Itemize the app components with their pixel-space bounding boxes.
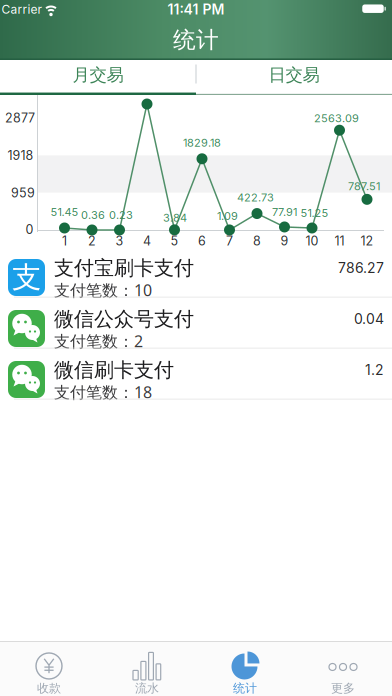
button[interactable]: 支 <box>0 252 392 303</box>
staticText: 2563.09 <box>314 112 359 125</box>
staticText: 1 <box>62 233 67 248</box>
staticText: 微信公众号支付 <box>54 307 194 331</box>
staticText: 51.25 <box>300 206 328 220</box>
staticText: 3.84 <box>163 211 187 224</box>
staticText: 11:41 PM <box>167 1 224 18</box>
staticText: 收款 <box>37 681 61 696</box>
staticText: 4 <box>143 233 151 248</box>
button[interactable]: 收款 <box>0 642 98 696</box>
button[interactable]: 月交易 <box>0 60 196 90</box>
staticText: 支 <box>12 259 41 295</box>
staticText: 1918 <box>7 148 33 163</box>
staticText: 支付宝刷卡支付 <box>54 256 194 280</box>
staticText: 9 <box>280 233 288 248</box>
staticText: 0.36 <box>81 208 105 222</box>
staticText: Carrier <box>1 2 42 17</box>
staticText: 0.04 <box>354 310 384 327</box>
staticText: 786.27 <box>338 259 384 276</box>
button[interactable]: 流水 <box>98 642 196 696</box>
staticText: 日交易 <box>268 64 319 86</box>
staticText: 更多 <box>331 681 355 696</box>
button[interactable]: 更多 <box>294 642 392 696</box>
staticText: 1.09 <box>217 209 238 223</box>
staticText: 微信刷卡支付 <box>54 358 174 382</box>
staticText: 1829.18 <box>183 136 221 149</box>
staticText: 流水 <box>135 681 159 696</box>
staticText: 3 <box>115 233 123 248</box>
button[interactable]: 微信公众号支付 <box>0 303 392 354</box>
staticText: 6 <box>198 233 206 248</box>
staticText: 7 <box>226 233 233 248</box>
staticText: 2877 <box>5 110 35 125</box>
staticText: 支付笔数：18 <box>54 381 152 403</box>
button[interactable]: 微信刷卡支付 <box>0 354 392 405</box>
staticText: 10 <box>305 233 318 248</box>
staticText: 422.73 <box>237 191 274 204</box>
button[interactable]: 统计 <box>196 642 294 696</box>
staticText: 1.2 <box>365 361 384 378</box>
staticText: 0 <box>25 222 33 237</box>
staticText: 统计 <box>173 26 219 54</box>
staticText: 787.51 <box>348 180 380 193</box>
staticText: 11 <box>334 233 344 248</box>
staticText: 2 <box>88 233 96 248</box>
staticText: 支付笔数：2 <box>54 330 143 352</box>
staticText: 51.45 <box>50 205 78 219</box>
staticText: 959 <box>11 185 35 200</box>
staticText: 8 <box>253 233 261 248</box>
staticText: 12 <box>360 233 373 248</box>
staticText: 5 <box>170 233 178 248</box>
button[interactable]: 日交易 <box>196 60 392 90</box>
staticText: 月交易 <box>72 64 123 86</box>
staticText: 支付笔数：10 <box>54 279 152 301</box>
staticText: 统计 <box>233 681 257 696</box>
staticText: 0.23 <box>109 208 133 222</box>
staticText: 77.91 <box>272 205 297 219</box>
